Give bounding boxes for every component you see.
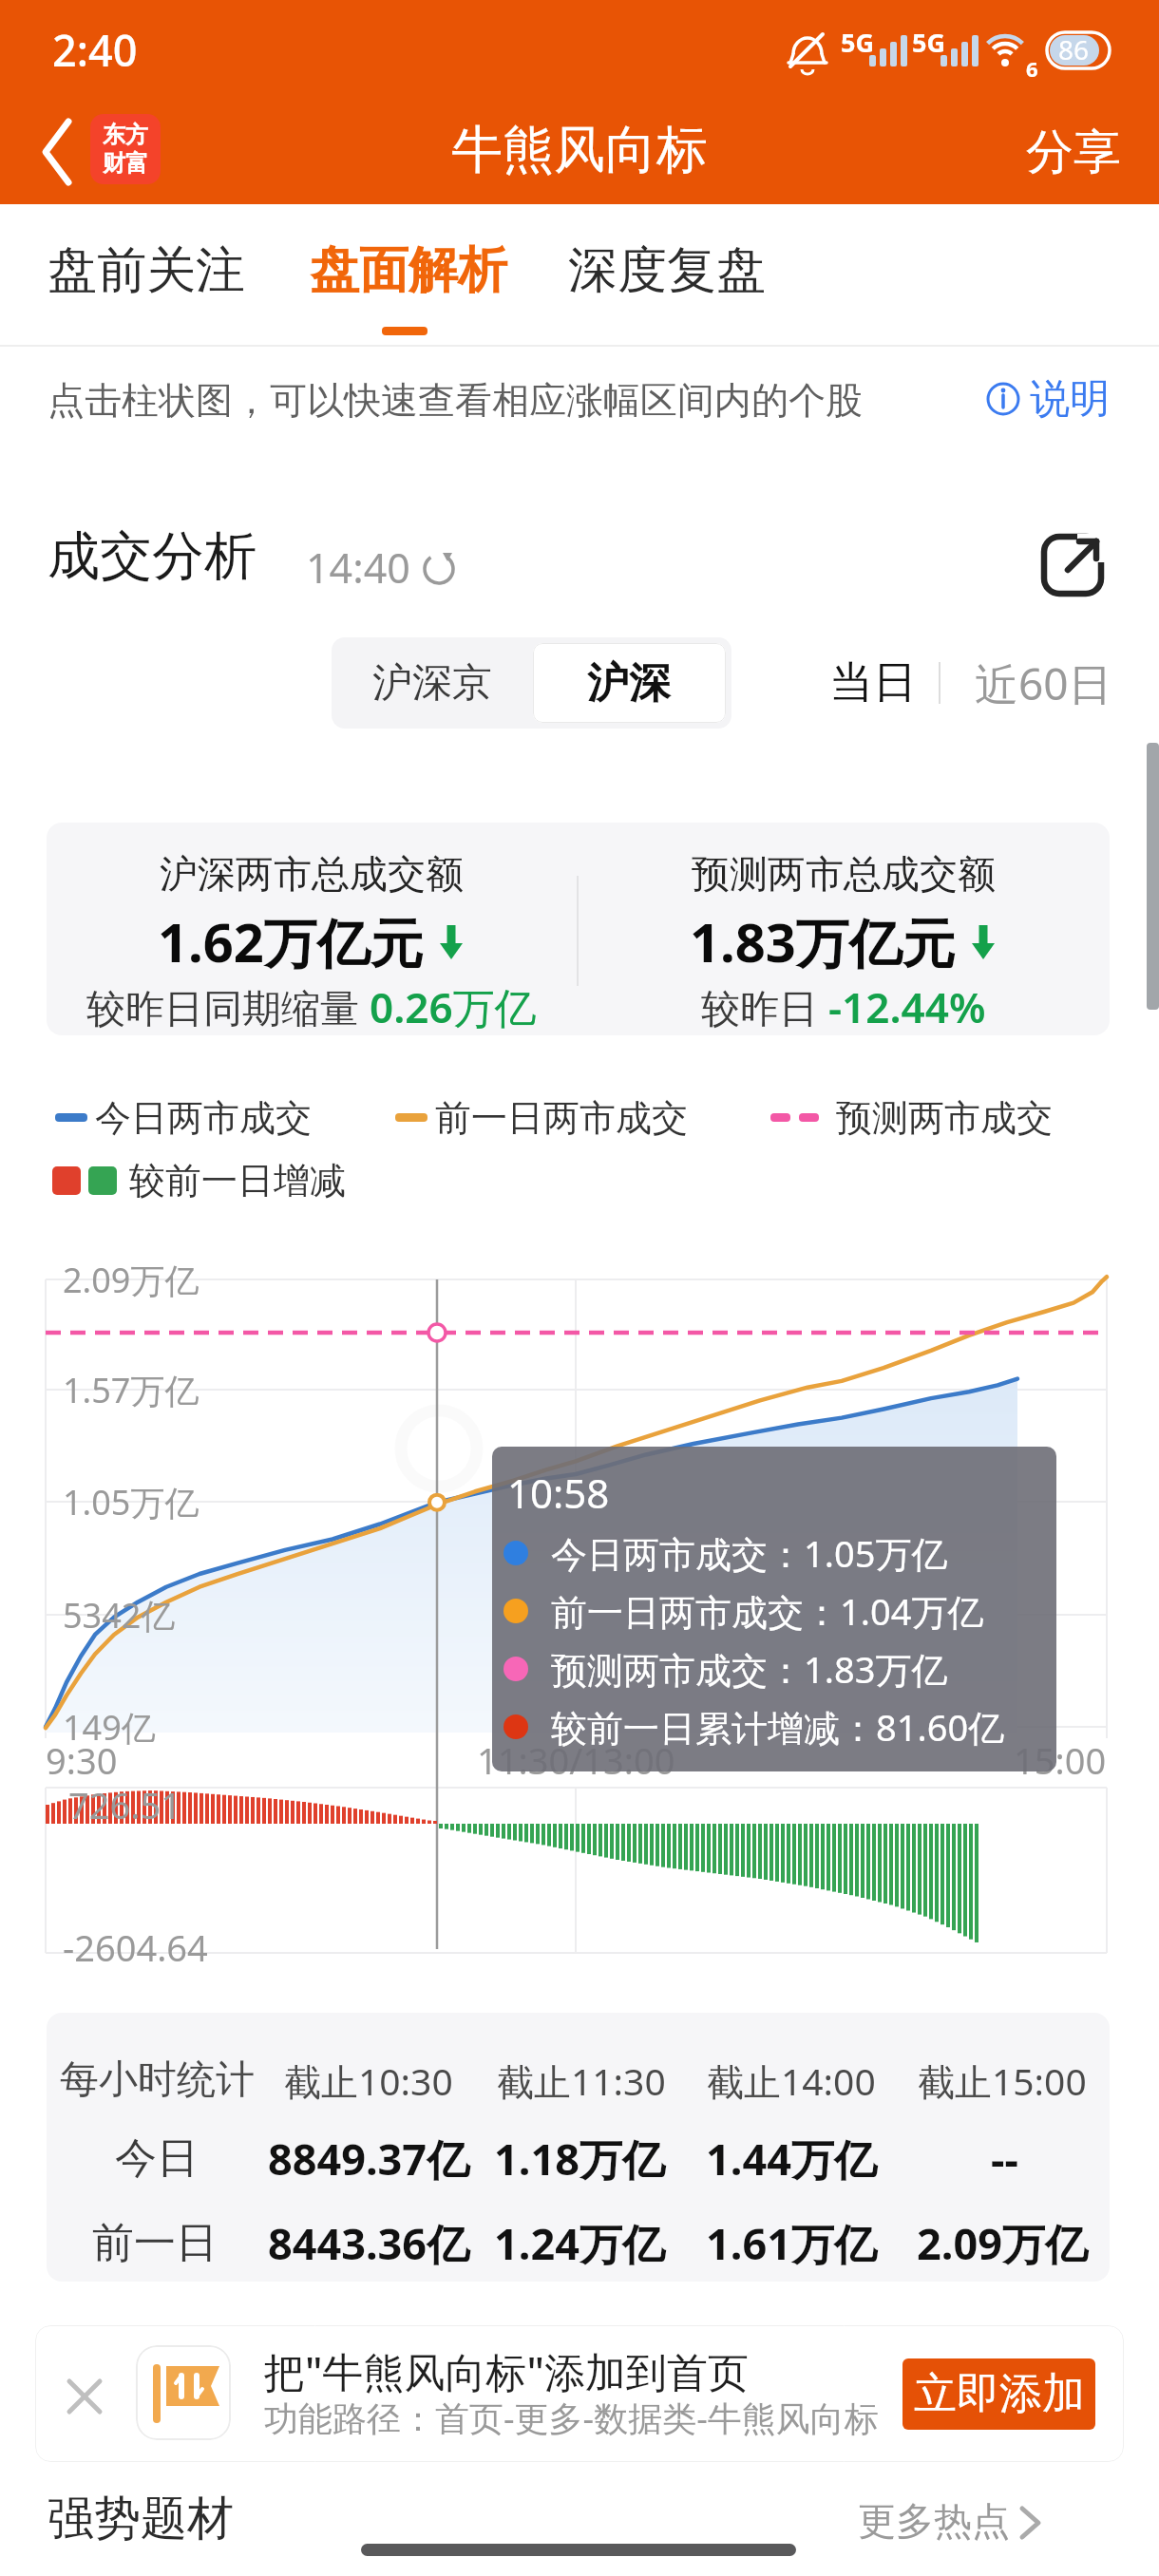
staticText: 财富 bbox=[103, 149, 148, 178]
staticText: 截止14:00 bbox=[707, 2055, 876, 2106]
staticText: 今日两市成交：1.05万亿 bbox=[551, 1528, 948, 1578]
staticText: 截止15:00 bbox=[918, 2055, 1087, 2106]
staticText: 8849.37亿 bbox=[268, 2130, 470, 2188]
staticText: 说明 bbox=[1030, 374, 1110, 425]
staticText: 较昨日 bbox=[701, 980, 828, 1033]
staticText: 1.18万亿 bbox=[494, 2130, 665, 2188]
button[interactable] bbox=[28, 109, 95, 195]
staticText: -2604.64 bbox=[63, 1923, 208, 1972]
staticText: 15:00 bbox=[1014, 1735, 1107, 1785]
staticText: 2.09万亿 bbox=[63, 1257, 199, 1303]
button[interactable]: 分享 bbox=[988, 114, 1121, 190]
staticText: 2:40 bbox=[52, 21, 138, 79]
staticText: 沪深京 bbox=[372, 658, 492, 709]
staticText: -- bbox=[991, 2130, 1018, 2188]
staticText: 更多热点 bbox=[858, 2497, 1010, 2545]
staticText: 14:40 bbox=[306, 540, 410, 596]
staticText: 预测两市成交：1.83万亿 bbox=[551, 1644, 948, 1694]
button[interactable]: 立即添加 bbox=[902, 2358, 1095, 2430]
button[interactable] bbox=[291, 214, 547, 328]
staticText: 前一日 bbox=[92, 2217, 218, 2269]
button[interactable] bbox=[845, 2489, 1064, 2555]
staticText: 2.09万亿 bbox=[917, 2214, 1088, 2272]
staticText: 10:58 bbox=[507, 1466, 610, 1520]
staticText: 把"牛熊风向标"添加到首页 bbox=[264, 2343, 749, 2399]
staticText: 预测两市成交 bbox=[836, 1095, 1053, 1141]
staticText: 1.24万亿 bbox=[494, 2214, 665, 2272]
staticText: 5342亿 bbox=[63, 1592, 176, 1638]
staticText: 1.62万亿元 bbox=[158, 905, 424, 977]
staticText: 较前一日增减 bbox=[129, 1158, 346, 1203]
staticText: 今日 bbox=[115, 2132, 199, 2185]
staticText: 强势题材 bbox=[47, 2490, 234, 2548]
staticText: 较昨日同期缩量 bbox=[86, 980, 370, 1033]
staticText: 当日 bbox=[829, 655, 917, 710]
staticText: 726.51 bbox=[68, 1780, 181, 1829]
staticText: 功能路径：首页-更多-数据类-牛熊风向标 bbox=[264, 2395, 879, 2441]
staticText: 1.57万亿 bbox=[63, 1367, 199, 1413]
staticText: 东方 bbox=[103, 121, 148, 149]
button[interactable] bbox=[817, 646, 926, 722]
staticText: 9:30 bbox=[46, 1735, 118, 1785]
staticText: 近60日 bbox=[975, 653, 1112, 713]
staticText: 5G bbox=[912, 25, 945, 60]
staticText: 1.44万亿 bbox=[706, 2130, 877, 2188]
staticText: 沪深 bbox=[587, 657, 671, 710]
button[interactable] bbox=[28, 214, 285, 328]
staticText: 149亿 bbox=[63, 1704, 156, 1751]
staticText: 0.26万亿 bbox=[370, 978, 537, 1035]
staticText: 5G bbox=[841, 25, 874, 60]
staticText: 点击柱状图，可以快速查看相应涨幅区间内的个股 bbox=[47, 377, 863, 424]
staticText: 牛熊风向标 bbox=[451, 118, 708, 182]
staticText: 前一日两市成交 bbox=[435, 1095, 688, 1141]
button[interactable] bbox=[332, 637, 533, 729]
button[interactable] bbox=[533, 643, 726, 723]
staticText: -12.44% bbox=[828, 978, 986, 1035]
staticText: 1.05万亿 bbox=[63, 1479, 199, 1525]
staticText: 8443.36亿 bbox=[268, 2214, 470, 2272]
staticText: 盘面解析 bbox=[310, 239, 507, 302]
staticText: 预测两市总成交额 bbox=[692, 850, 996, 898]
staticText: 成交分析 bbox=[47, 523, 256, 589]
staticText: 86 bbox=[1058, 31, 1090, 67]
staticText: 6 bbox=[1026, 54, 1038, 83]
staticText: 每小时统计 bbox=[60, 2055, 255, 2105]
button[interactable] bbox=[969, 366, 1121, 432]
staticText: 较前一日累计增减：81.60亿 bbox=[551, 1702, 1005, 1752]
button[interactable]: 东方 bbox=[90, 114, 161, 184]
button[interactable] bbox=[964, 646, 1116, 722]
staticText: 今日两市成交 bbox=[95, 1095, 312, 1141]
staticText: 截止10:30 bbox=[284, 2055, 453, 2106]
staticText: 沪深两市总成交额 bbox=[160, 850, 464, 898]
staticText: 截止11:30 bbox=[497, 2055, 666, 2106]
button[interactable] bbox=[551, 214, 807, 328]
button[interactable] bbox=[1041, 534, 1106, 598]
staticText: 1.61万亿 bbox=[706, 2214, 877, 2272]
staticText: 分享 bbox=[1026, 123, 1121, 182]
button[interactable] bbox=[57, 2369, 112, 2424]
staticText: 深度复盘 bbox=[568, 239, 766, 302]
staticText: 11:30/13:00 bbox=[477, 1735, 675, 1785]
staticText: 前一日两市成交：1.04万亿 bbox=[551, 1586, 984, 1636]
staticText: 1.83万亿元 bbox=[690, 905, 956, 977]
staticText: 立即添加 bbox=[914, 2367, 1085, 2421]
staticText: 盘前关注 bbox=[47, 239, 245, 302]
